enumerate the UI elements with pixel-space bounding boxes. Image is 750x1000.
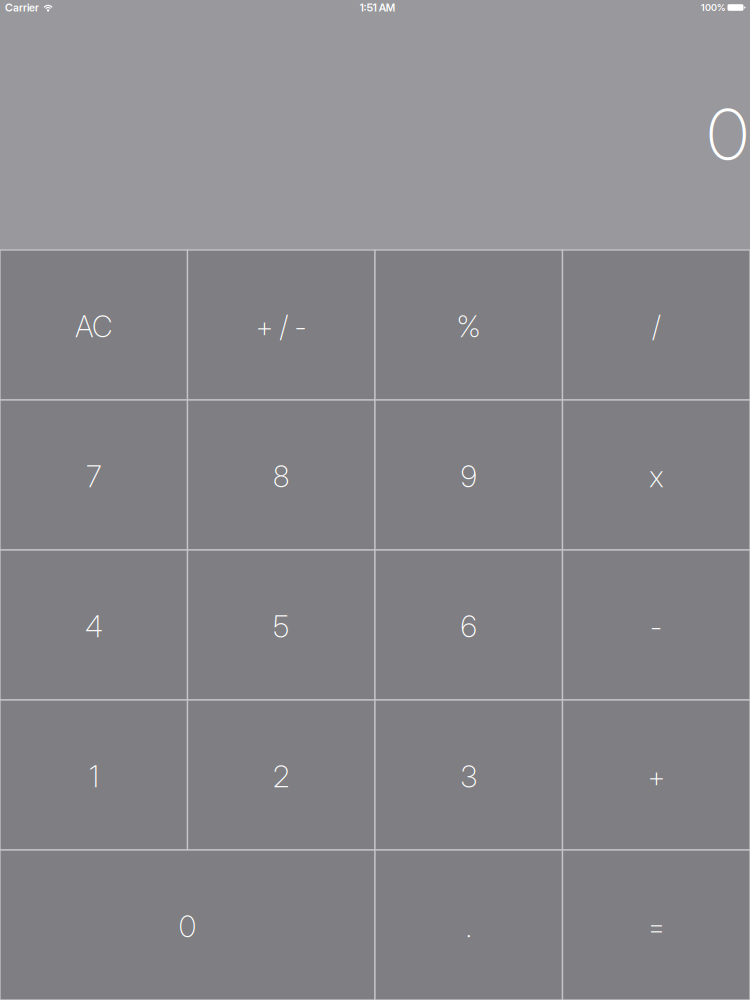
- staticText: 100%: [701, 2, 725, 13]
- staticText: 6: [461, 609, 477, 644]
- staticText: 3: [461, 759, 477, 794]
- staticText: 8: [273, 459, 289, 494]
- button[interactable]: Minus: [562, 550, 750, 700]
- staticText: 0: [179, 909, 196, 944]
- staticText: 0: [707, 90, 748, 177]
- staticText: +: [648, 759, 665, 794]
- button[interactable]: 8: [187, 400, 375, 550]
- staticText: + / -: [256, 309, 307, 344]
- button[interactable]: 7: [0, 400, 187, 550]
- staticText: 1: [89, 759, 98, 794]
- button[interactable]: 0: [0, 850, 375, 1000]
- button[interactable]: 1: [0, 700, 187, 850]
- button[interactable]: Plus minus: [187, 250, 375, 400]
- button[interactable]: Multiply: [562, 400, 750, 550]
- staticText: 5: [273, 609, 289, 644]
- staticText: %: [457, 309, 481, 344]
- button[interactable]: 5: [187, 550, 375, 700]
- button[interactable]: All clear: [0, 250, 187, 400]
- button[interactable]: Divide: [562, 250, 750, 400]
- button[interactable]: 2: [187, 700, 375, 850]
- staticText: /: [652, 309, 660, 344]
- staticText: x: [649, 459, 663, 494]
- staticText: 7: [86, 459, 101, 494]
- staticText: =: [648, 909, 665, 944]
- staticText: 1:51 AM: [360, 1, 395, 14]
- staticText: 9: [461, 459, 477, 494]
- button[interactable]: Percent: [375, 250, 562, 400]
- staticText: AC: [75, 309, 112, 344]
- button[interactable]: Decimal point: [375, 850, 562, 1000]
- staticText: 2: [273, 759, 289, 794]
- button[interactable]: Plus: [562, 700, 750, 850]
- button[interactable]: 6: [375, 550, 562, 700]
- button[interactable]: Equals: [562, 850, 750, 1000]
- button[interactable]: 9: [375, 400, 562, 550]
- button[interactable]: 4: [0, 550, 187, 700]
- button[interactable]: 3: [375, 700, 562, 850]
- staticText: .: [466, 909, 472, 944]
- staticText: 4: [85, 609, 102, 644]
- staticText: Carrier: [5, 1, 39, 14]
- staticText: -: [650, 609, 662, 644]
